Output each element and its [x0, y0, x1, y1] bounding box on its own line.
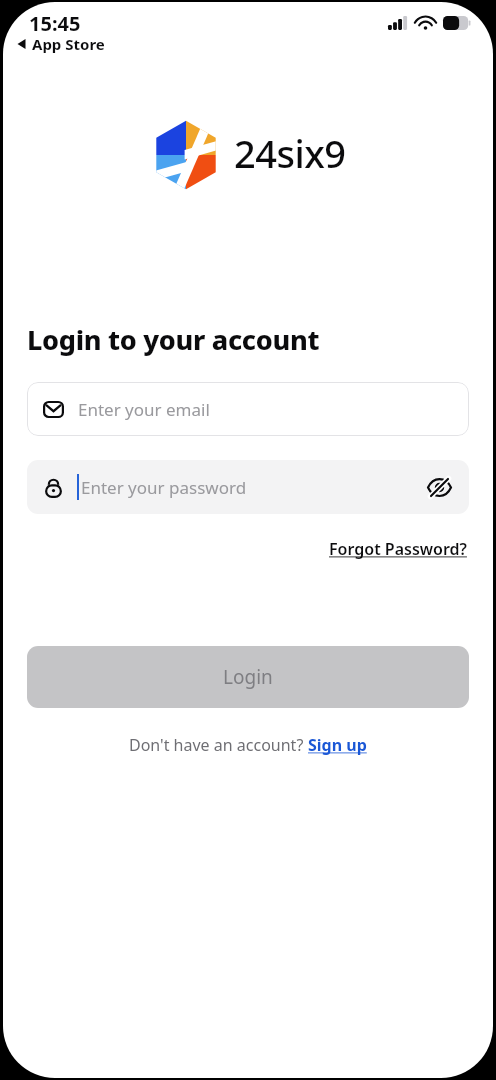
- staticText: App Store: [32, 34, 105, 54]
- button[interactable]: Login: [27, 646, 469, 708]
- staticText: Enter your password: [81, 476, 247, 499]
- staticText: Enter your email: [78, 398, 210, 421]
- staticText: 24six9: [234, 127, 346, 179]
- button[interactable]: Enter your password: [27, 460, 469, 514]
- staticText: Login: [223, 664, 273, 690]
- staticText: Don't have an account?: [129, 734, 308, 756]
- button[interactable]: Forgot Password?: [325, 534, 471, 564]
- staticText: Login to your account: [27, 321, 320, 358]
- button[interactable]: Enter your email: [27, 382, 469, 436]
- button[interactable]: Show password: [421, 469, 457, 505]
- staticText: 15:45: [29, 10, 81, 37]
- staticText: Sign up: [308, 734, 367, 756]
- button[interactable]: Sign up: [308, 734, 367, 756]
- staticText: Forgot Password?: [329, 538, 467, 560]
